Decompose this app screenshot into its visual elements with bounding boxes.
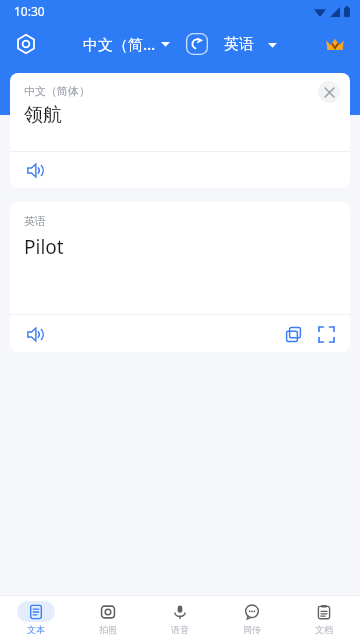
staticText: 10:30 — [14, 3, 45, 19]
staticText: 领航 — [24, 103, 62, 127]
button[interactable]: 中文（简… — [79, 30, 174, 58]
button[interactable]: 拍照 — [72, 598, 144, 638]
staticText: 同传 — [243, 624, 261, 635]
staticText: 语音 — [171, 624, 189, 635]
staticText: 文档 — [315, 624, 333, 635]
button[interactable]: Settings — [8, 26, 44, 62]
button[interactable]: 英语 — [220, 31, 281, 58]
staticText: 中文（简… — [83, 34, 156, 54]
button[interactable]: Fullscreen — [311, 319, 341, 349]
staticText: Pilot — [24, 234, 64, 260]
staticText: 英语 — [224, 35, 254, 54]
staticText: 拍照 — [99, 624, 117, 635]
button[interactable]: 文档 — [288, 598, 360, 638]
button[interactable]: Clear — [318, 81, 340, 103]
staticText: 英语 — [24, 214, 46, 228]
button[interactable]: 文本 — [0, 598, 72, 638]
button[interactable]: Play translation audio — [20, 319, 50, 349]
button[interactable]: Copy — [278, 319, 308, 349]
button[interactable]: Premium — [318, 27, 352, 61]
button[interactable]: 同传 — [216, 598, 288, 638]
button[interactable]: 语音 — [144, 598, 216, 638]
staticText: 文本 — [27, 624, 45, 635]
button[interactable]: Swap languages — [184, 31, 210, 57]
staticText: 中文（简体） — [24, 84, 90, 98]
button[interactable]: Play source audio — [20, 155, 50, 185]
